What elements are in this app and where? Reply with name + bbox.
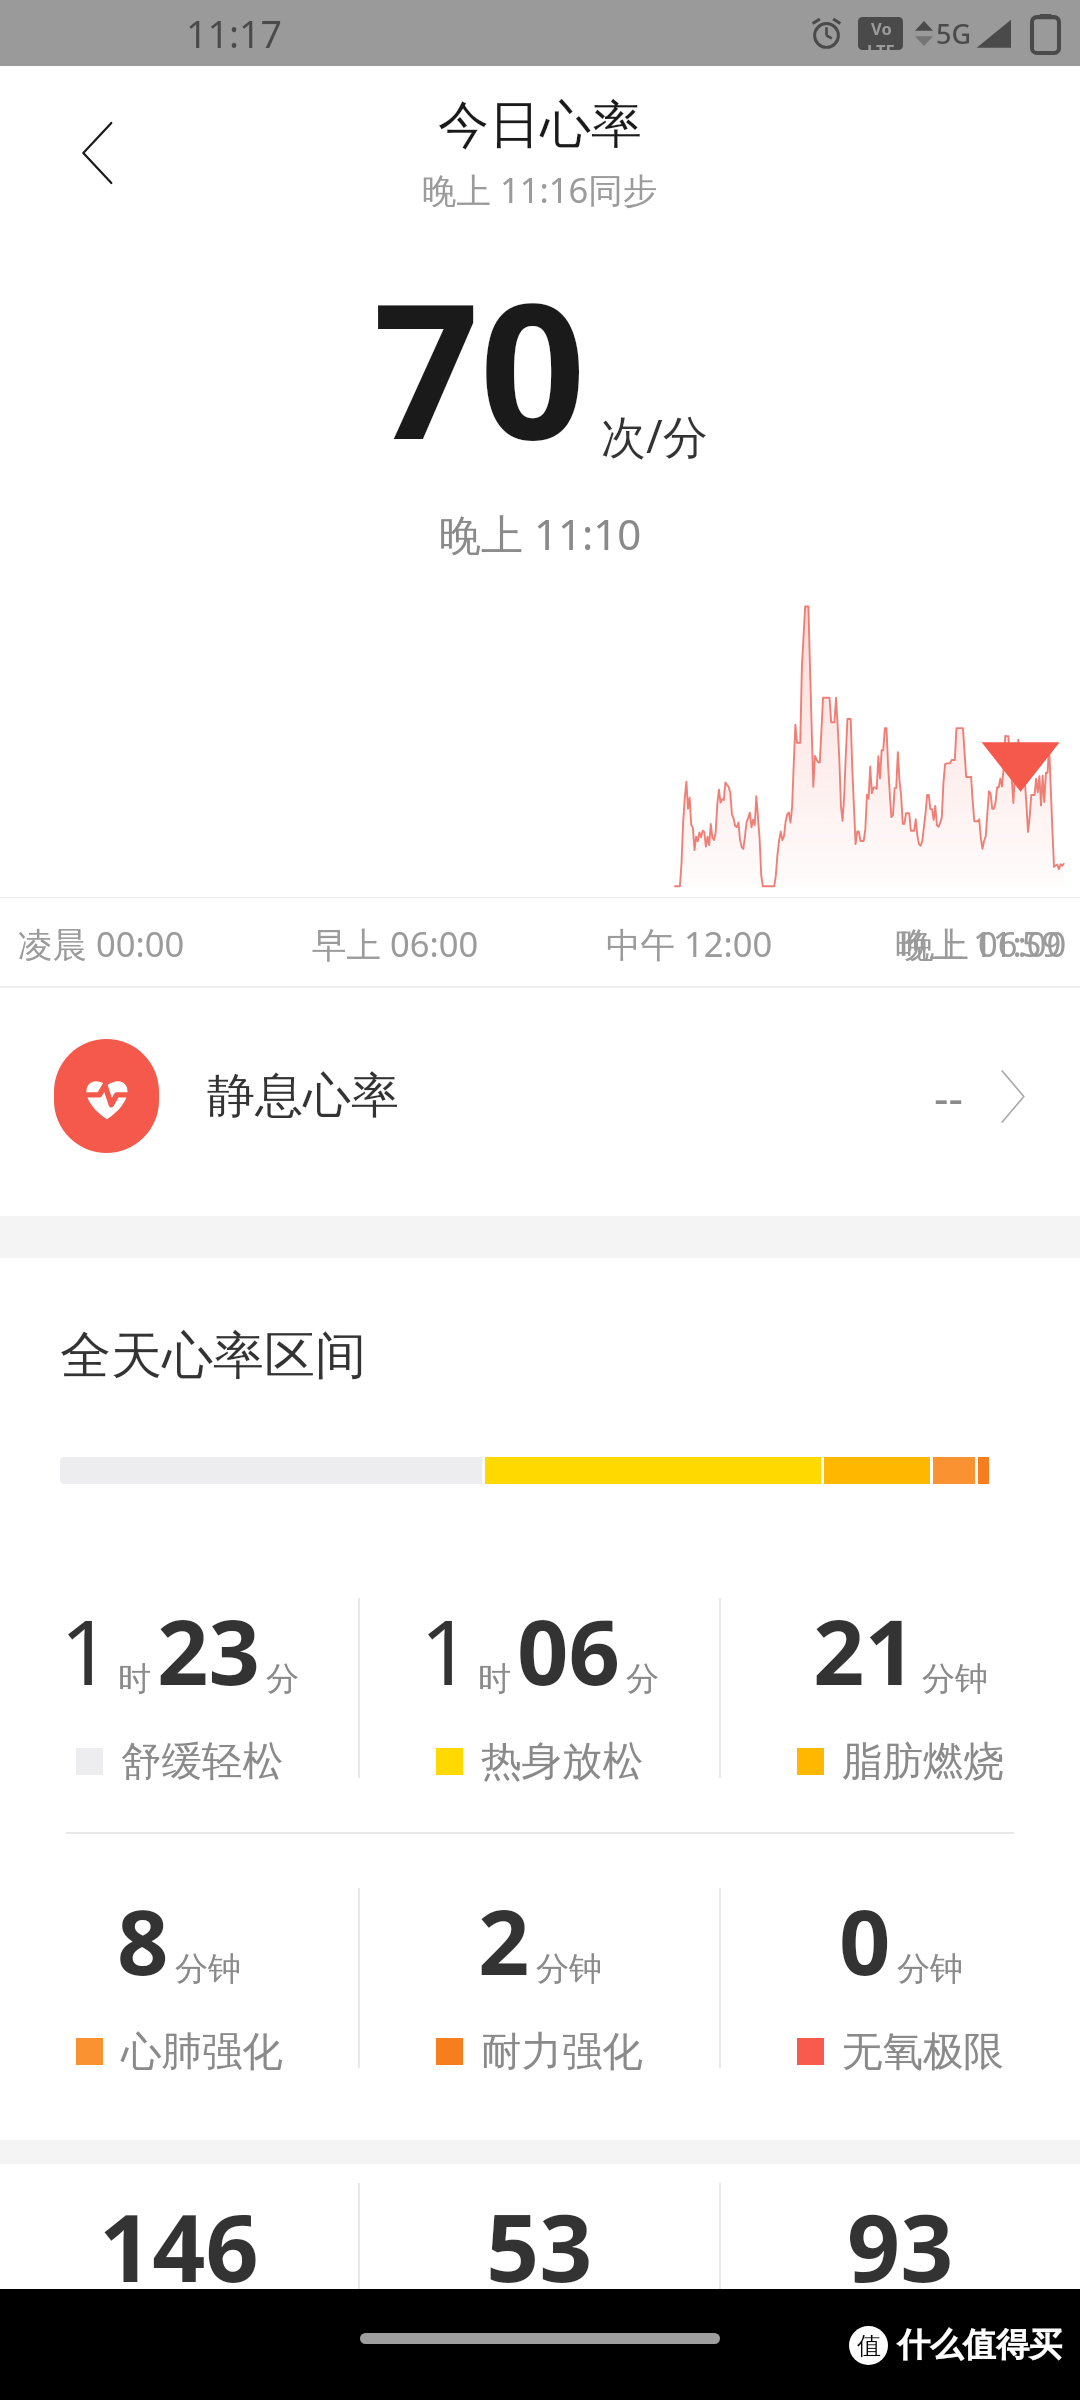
staticText: 热身放松	[481, 1736, 643, 1787]
staticText: 晚上 11:16同步	[422, 166, 658, 213]
staticText: 146	[99, 2183, 259, 2310]
staticText: --	[934, 1066, 963, 1127]
staticText: 分钟	[175, 1948, 241, 1990]
staticText: 23	[157, 1589, 260, 1712]
staticText: LTE	[867, 39, 895, 50]
staticText: 53	[486, 2183, 593, 2310]
staticText: 晚上 06:00	[900, 920, 1067, 967]
button[interactable]: Back	[24, 81, 168, 225]
staticText: 晚上 11:10	[439, 505, 642, 562]
staticText: 最低心率	[459, 2331, 621, 2382]
staticText: 时	[478, 1658, 511, 1700]
staticText: 什么值得买	[897, 2324, 1062, 2366]
staticText: 1	[60, 1589, 112, 1712]
staticText: 70	[373, 240, 586, 493]
staticText: 时	[118, 1658, 151, 1700]
staticText: 凌晨 00:00	[18, 920, 185, 967]
staticText: 值	[857, 2331, 881, 2361]
staticText: 今日心率	[438, 93, 642, 157]
staticText: 脂肪燃烧	[842, 1736, 1004, 1787]
staticText: 耐力强化	[481, 2026, 643, 2077]
staticText: 全天心率区间	[60, 1324, 366, 1388]
staticText: 舒缓轻松	[121, 1736, 283, 1787]
staticText: 21	[813, 1589, 916, 1712]
staticText: 1	[420, 1589, 472, 1712]
staticText: 静息心率	[207, 1066, 399, 1126]
staticText: 早上 06:00	[312, 920, 479, 967]
staticText: 平均心率	[820, 2331, 982, 2382]
staticText: 06	[517, 1589, 620, 1712]
staticText: 分钟	[897, 1948, 963, 1990]
staticText: Vo	[871, 17, 892, 39]
staticText: 分	[266, 1658, 299, 1700]
staticText: 中午 12:00	[606, 920, 773, 967]
staticText: 心肺强化	[121, 2026, 283, 2077]
staticText: 8	[117, 1879, 169, 2002]
staticText: 分钟	[536, 1948, 602, 1990]
staticText: 次/分	[601, 405, 708, 466]
staticText: 11:17	[186, 8, 282, 59]
staticText: 0	[839, 1879, 891, 2002]
staticText: 晚上 11:59	[895, 920, 1062, 967]
staticText: 2	[478, 1879, 530, 2002]
staticText: 5G	[936, 15, 972, 52]
staticText: 93	[847, 2183, 954, 2310]
button[interactable]: 静息心率	[0, 988, 1080, 1204]
staticText: 分	[626, 1658, 659, 1700]
staticText: 无氧极限	[842, 2026, 1004, 2077]
staticText: 分钟	[922, 1658, 988, 1700]
